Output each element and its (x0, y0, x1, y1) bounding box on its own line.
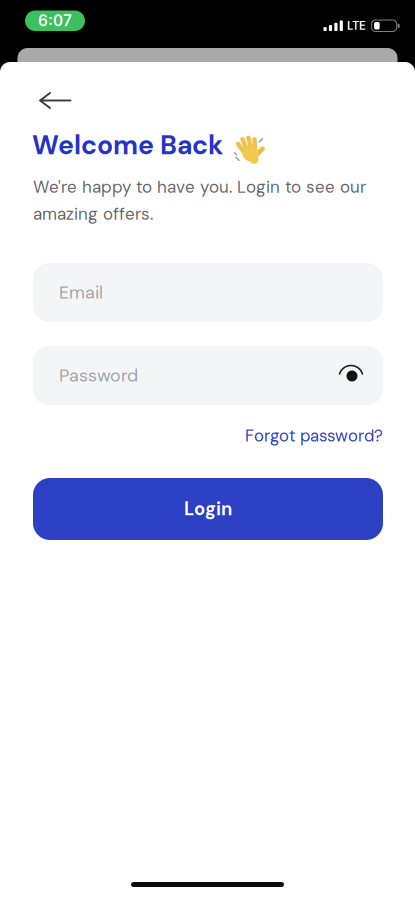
staticText: Password (59, 364, 138, 387)
button[interactable]: Forgot password? (245, 425, 383, 447)
button[interactable]: 6:07 (25, 10, 85, 31)
button[interactable]: Password (33, 346, 383, 405)
button[interactable]: Back (33, 82, 77, 118)
button[interactable]: Show password (331, 354, 371, 394)
button[interactable]: Login (33, 478, 383, 540)
button[interactable]: Email (33, 263, 383, 322)
staticText: LTE (347, 19, 366, 33)
staticText: Forgot password? (245, 425, 383, 447)
staticText: 6:07 (38, 11, 72, 30)
staticText: Email (59, 281, 103, 304)
staticText: Login (184, 497, 232, 521)
staticText: We're happy to have you. Login to see ou… (33, 176, 366, 225)
staticText: Welcome Back (32, 128, 223, 162)
